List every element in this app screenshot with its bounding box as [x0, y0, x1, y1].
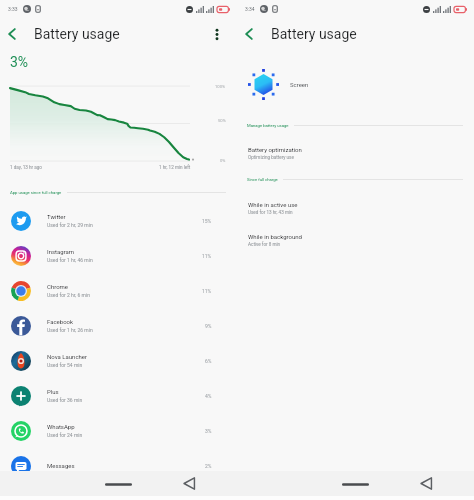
staticText: WhatsApp: [47, 423, 75, 430]
button[interactable]: Instagram: [0, 238, 237, 273]
staticText: 50%: [218, 118, 226, 123]
staticText: 11%: [202, 288, 212, 294]
staticText: Used for 54 min: [47, 362, 83, 368]
staticText: 0%: [220, 158, 226, 163]
staticText: Active for 8 min: [248, 242, 281, 247]
staticText: Since full charge: [247, 177, 278, 182]
button[interactable]: WhatsApp: [0, 413, 237, 448]
button[interactable]: More options: [203, 18, 231, 50]
staticText: Used for 36 min: [47, 397, 83, 403]
button[interactable]: Home: [330, 471, 380, 496]
button[interactable]: Facebook: [0, 308, 237, 343]
staticText: Messages: [47, 462, 75, 469]
staticText: While in active use: [248, 201, 298, 208]
staticText: Facebook: [47, 318, 74, 325]
staticText: Plus: [47, 388, 59, 395]
staticText: Used for 2 hr, 29 min: [47, 222, 93, 228]
staticText: App usage since full charge: [10, 190, 62, 195]
button[interactable]: Navigate up: [0, 18, 24, 50]
staticText: Used for 13 hr, 43 min: [248, 210, 293, 215]
staticText: 1 hr, 12 min left: [159, 165, 191, 170]
staticText: 2%: [205, 463, 212, 469]
staticText: 9%: [205, 323, 212, 329]
staticText: Used for 24 min: [47, 432, 83, 438]
staticText: Manage battery usage: [247, 123, 289, 128]
button[interactable]: Battery optimization: [237, 146, 474, 160]
staticText: 3%: [205, 428, 212, 434]
staticText: Screen: [290, 81, 309, 88]
button[interactable]: Twitter: [0, 203, 237, 238]
button[interactable]: Back: [409, 471, 443, 496]
staticText: 15%: [202, 218, 212, 224]
button[interactable]: Nova Launcher: [0, 343, 237, 378]
button[interactable]: While in background: [237, 233, 474, 247]
staticText: Battery usage: [271, 26, 357, 42]
staticText: 6%: [205, 358, 212, 364]
staticText: 4%: [205, 393, 212, 399]
staticText: 1 day, 13 hr ago: [10, 165, 42, 170]
staticText: Twitter: [47, 213, 66, 220]
staticText: Nova Launcher: [47, 353, 88, 360]
staticText: While in background: [248, 233, 303, 240]
staticText: 11%: [202, 253, 212, 259]
staticText: Used for 2 hr, 6 min: [47, 292, 90, 298]
staticText: Used for 1 hr, 46 min: [47, 257, 93, 263]
button[interactable]: Home: [93, 471, 143, 496]
staticText: Chrome: [47, 283, 69, 290]
button[interactable]: Navigate up: [237, 18, 261, 50]
staticText: Battery optimization: [248, 146, 302, 153]
staticText: 100%: [215, 84, 226, 89]
staticText: Used for 1 hr, 26 min: [47, 327, 93, 333]
button[interactable]: Plus: [0, 378, 237, 413]
button[interactable]: Chrome: [0, 273, 237, 308]
staticText: 3:33: [8, 6, 18, 12]
button[interactable]: Messages: [0, 448, 237, 471]
staticText: Instagram: [47, 248, 75, 255]
staticText: 3:34: [245, 6, 255, 12]
staticText: 3%: [10, 54, 29, 70]
staticText: Optimizing battery use: [248, 155, 294, 160]
staticText: Battery usage: [34, 26, 120, 42]
button[interactable]: Back: [172, 471, 206, 496]
button[interactable]: While in active use: [237, 201, 474, 215]
